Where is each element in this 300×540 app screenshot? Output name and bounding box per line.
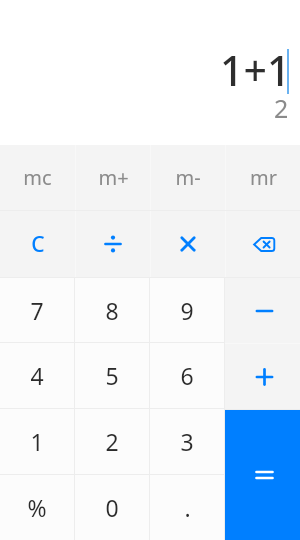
staticText: C bbox=[31, 230, 45, 259]
button[interactable]: 9 bbox=[150, 278, 224, 342]
button[interactable]: mc bbox=[0, 145, 75, 210]
button[interactable]: Plus bbox=[225, 344, 300, 409]
button[interactable]: Minus bbox=[225, 278, 300, 343]
button[interactable]: Multiply bbox=[151, 211, 225, 277]
staticText: 0 bbox=[105, 492, 119, 523]
staticText: 3 bbox=[180, 426, 194, 457]
staticText: 1 bbox=[30, 426, 44, 457]
staticText: 8 bbox=[105, 295, 119, 326]
staticText: mr bbox=[250, 164, 277, 191]
staticText: m- bbox=[175, 164, 201, 191]
button[interactable]: 4 bbox=[0, 343, 74, 408]
staticText: 4 bbox=[30, 360, 44, 391]
staticText: % bbox=[27, 492, 47, 523]
button[interactable]: m+ bbox=[76, 145, 150, 210]
button[interactable]: 5 bbox=[75, 343, 149, 408]
button[interactable]: 1 bbox=[0, 409, 74, 474]
staticText: 1+1 bbox=[220, 42, 291, 98]
button[interactable]: 8 bbox=[75, 278, 149, 342]
button[interactable]: 3 bbox=[150, 409, 224, 474]
staticText: 2 bbox=[274, 91, 289, 125]
staticText: 9 bbox=[180, 295, 194, 326]
button[interactable]: Equals bbox=[225, 410, 300, 540]
button[interactable]: mr bbox=[226, 145, 300, 210]
button[interactable]: . bbox=[150, 475, 224, 540]
button[interactable]: C bbox=[0, 211, 75, 277]
staticText: . bbox=[184, 492, 191, 523]
button[interactable]: % bbox=[0, 475, 74, 540]
button[interactable]: Divide bbox=[76, 211, 150, 277]
button[interactable]: 2 bbox=[75, 409, 149, 474]
staticText: mc bbox=[23, 164, 52, 191]
staticText: m+ bbox=[98, 164, 129, 191]
button[interactable]: 7 bbox=[0, 278, 74, 342]
button[interactable]: 0 bbox=[75, 475, 149, 540]
staticText: 5 bbox=[105, 360, 119, 391]
staticText: 2 bbox=[105, 426, 119, 457]
staticText: 7 bbox=[30, 295, 44, 326]
staticText: 6 bbox=[180, 360, 194, 391]
button[interactable]: Backspace bbox=[226, 211, 300, 277]
button[interactable]: m- bbox=[151, 145, 225, 210]
button[interactable]: 6 bbox=[150, 343, 224, 408]
